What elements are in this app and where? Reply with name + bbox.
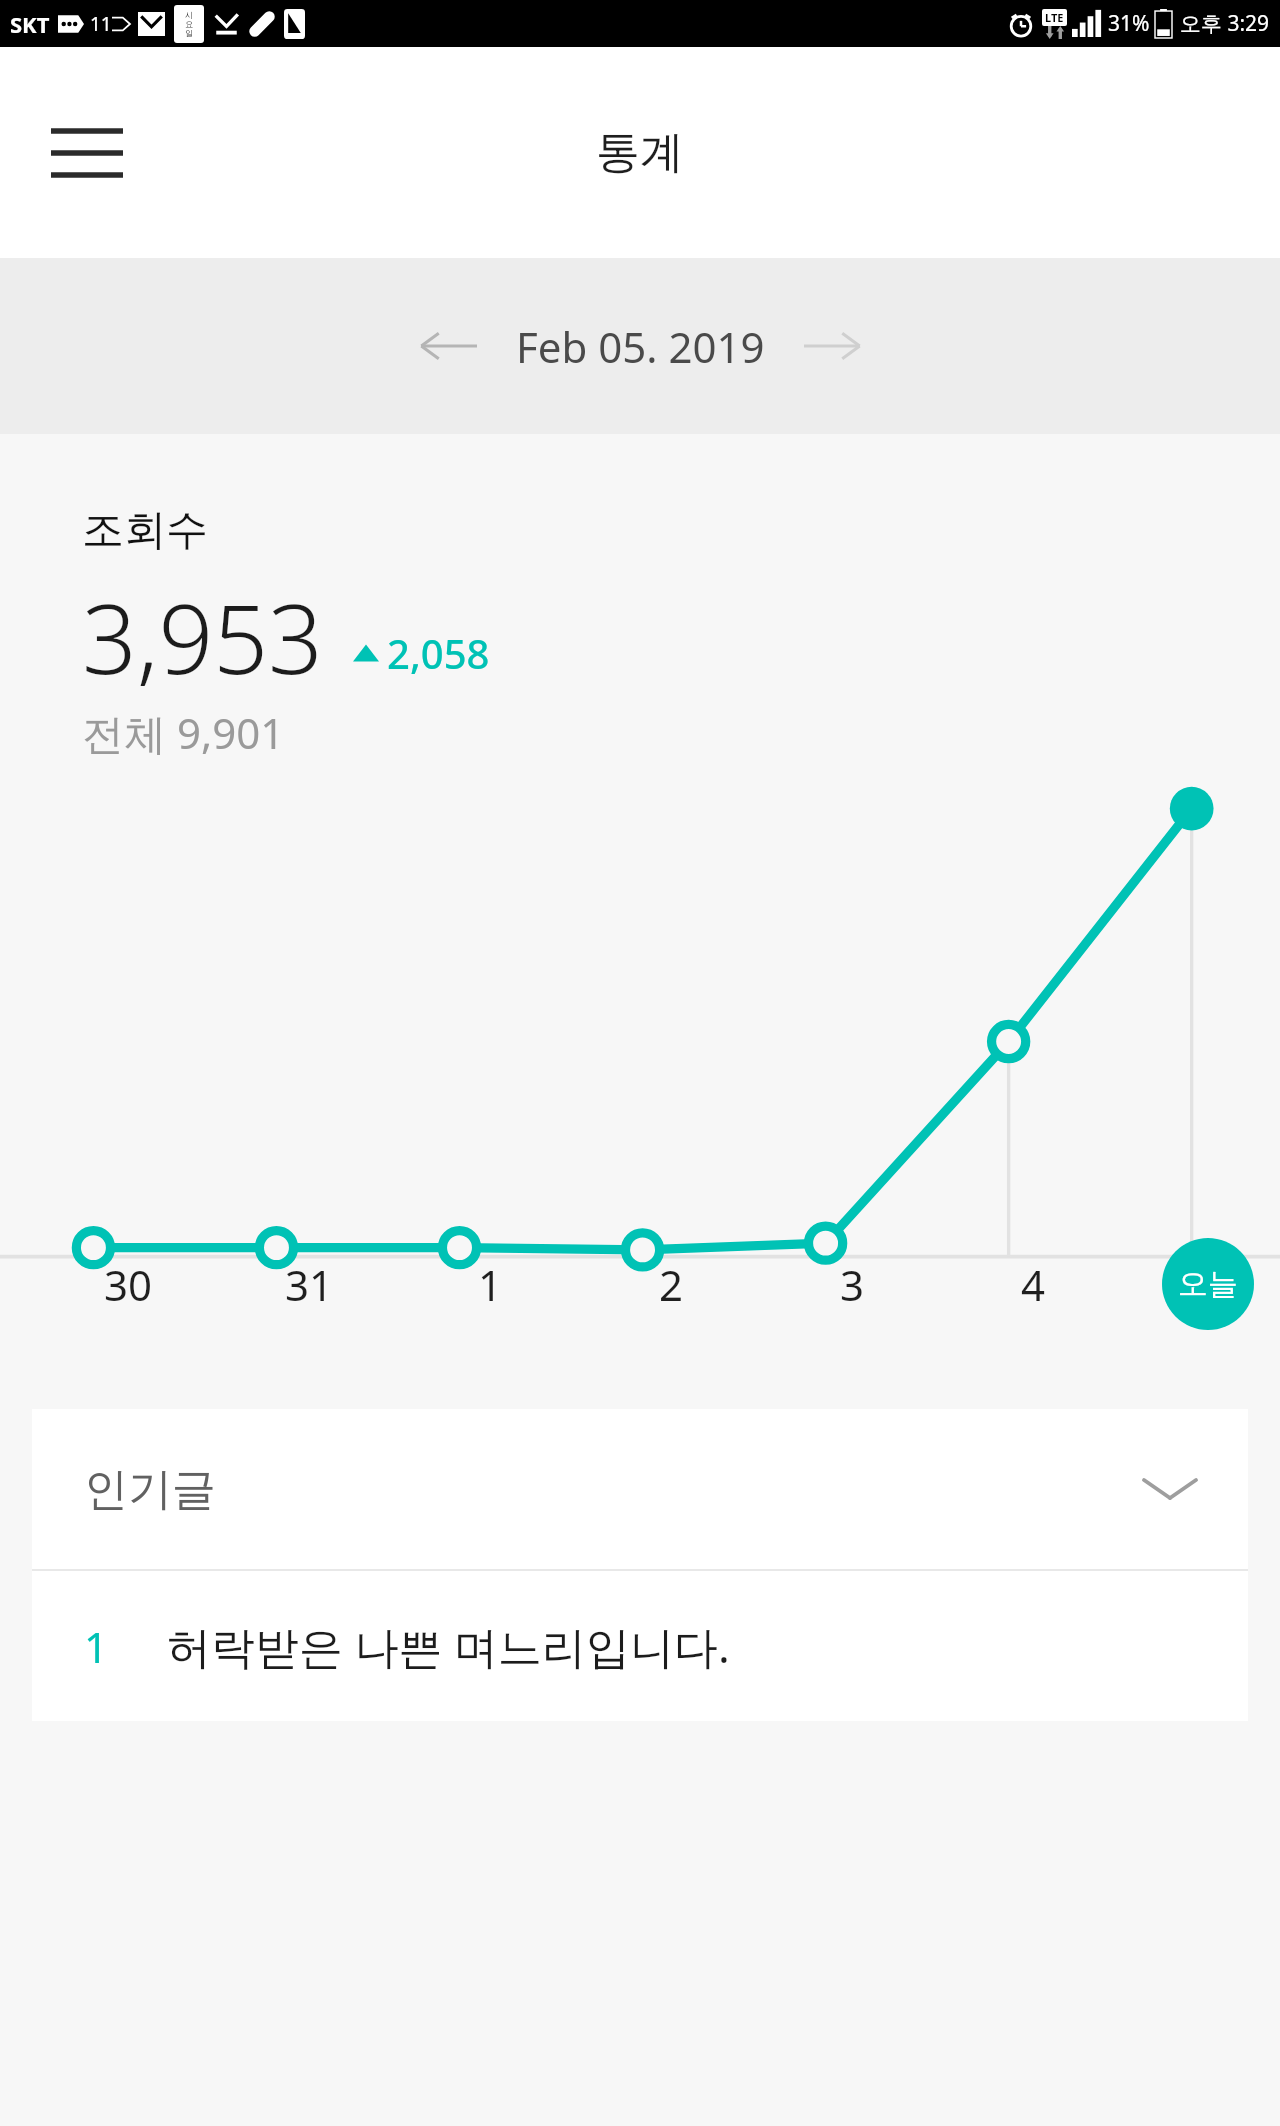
- button[interactable]: Menu: [48, 114, 126, 192]
- staticText: SKT: [10, 9, 50, 39]
- staticText: 3: [840, 1256, 865, 1313]
- staticText: 3,953: [82, 571, 323, 702]
- staticText: 4: [1021, 1256, 1046, 1313]
- staticText: 2: [659, 1256, 684, 1313]
- staticText: 31%: [1108, 9, 1150, 38]
- staticText: 2,058: [387, 626, 490, 680]
- staticText: 오늘: [1178, 1265, 1238, 1303]
- staticText: 31: [285, 1256, 334, 1313]
- staticText: 30: [104, 1256, 153, 1313]
- button[interactable]: 오늘: [1162, 1238, 1254, 1330]
- staticText: 오후 3:29: [1180, 9, 1270, 38]
- staticText: 시 요 일: [185, 10, 193, 38]
- staticText: 조회수: [82, 504, 208, 557]
- button[interactable]: Next day: [791, 304, 875, 388]
- button[interactable]: 1: [32, 1571, 1248, 1721]
- staticText: 인기글: [84, 1462, 216, 1517]
- staticText: LTE: [1045, 10, 1064, 25]
- button[interactable]: 인기글: [32, 1409, 1248, 1569]
- staticText: 1: [478, 1256, 503, 1313]
- staticText: 11: [90, 11, 112, 37]
- staticText: Feb 05. 2019: [516, 318, 765, 375]
- staticText: 1: [84, 1618, 109, 1675]
- staticText: 허락받은 나쁜 며느리입니다.: [167, 1616, 730, 1676]
- staticText: 전체 9,901: [82, 704, 285, 761]
- button[interactable]: Previous day: [406, 304, 490, 388]
- staticText: 통계: [596, 125, 684, 180]
